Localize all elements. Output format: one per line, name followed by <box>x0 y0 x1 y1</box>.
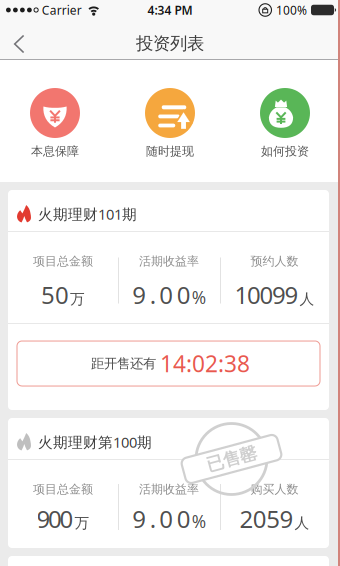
button[interactable]: Back <box>0 21 40 59</box>
staticText: % <box>192 286 206 309</box>
staticText: 活期收益率 <box>139 254 199 269</box>
staticText: 100% <box>276 2 307 18</box>
button[interactable]: 本息保障 <box>0 60 110 182</box>
staticText: 万 <box>70 290 85 308</box>
staticText: 火期理财101期 <box>38 204 137 224</box>
staticText: 项目总金额 <box>33 482 93 497</box>
button[interactable]: 随时提现 <box>110 60 230 182</box>
staticText: 10099 <box>234 279 298 311</box>
button[interactable]: 火期理财101期 <box>0 190 340 410</box>
staticText: 14:02:38 <box>160 348 250 378</box>
staticText: 900 <box>36 503 73 535</box>
staticText: 火期理财第100期 <box>38 432 152 452</box>
staticText: 9.00 <box>132 279 191 311</box>
staticText: Carrier <box>42 2 82 18</box>
staticText: 50 <box>41 279 69 311</box>
staticText: 9.00 <box>132 503 191 535</box>
staticText: 购买人数 <box>250 482 298 497</box>
staticText: 项目总金额 <box>33 254 93 269</box>
staticText: 万 <box>74 514 89 532</box>
staticText: 投资列表 <box>136 33 204 54</box>
staticText: 人 <box>294 514 309 532</box>
staticText: 2059 <box>240 503 293 535</box>
button[interactable]: 火期理财第100期 <box>0 418 340 548</box>
staticText: 活期收益率 <box>139 482 199 497</box>
staticText: % <box>192 510 206 533</box>
button[interactable]: 如何投资 <box>230 60 340 182</box>
staticText: 距开售还有 <box>91 355 156 372</box>
staticText: 随时提现 <box>146 144 194 159</box>
staticText: 本息保障 <box>31 144 79 159</box>
staticText: 4:34 PM <box>147 2 192 18</box>
staticText: 人 <box>299 290 314 308</box>
staticText: 已售罄 <box>206 448 257 470</box>
staticText: 如何投资 <box>261 144 309 159</box>
staticText: 预约人数 <box>250 254 298 269</box>
